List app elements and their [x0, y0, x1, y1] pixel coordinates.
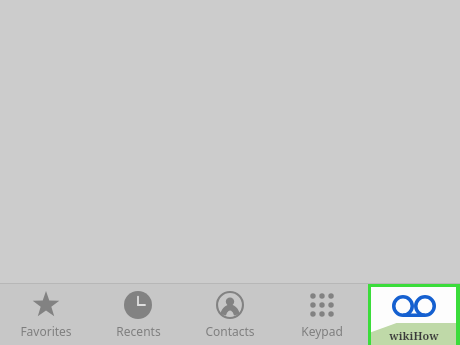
staticText: Contacts: [205, 323, 255, 339]
button[interactable]: Favorites: [0, 284, 92, 345]
staticText: Favorites: [20, 323, 72, 339]
button[interactable]: Recents: [92, 284, 184, 345]
button[interactable]: Voicemail: [368, 284, 460, 345]
button[interactable]: Contacts: [184, 284, 276, 345]
button[interactable]: Keypad: [276, 284, 368, 345]
staticText: wikiHow: [389, 328, 439, 343]
staticText: Recents: [116, 323, 161, 339]
staticText: Keypad: [301, 323, 343, 339]
